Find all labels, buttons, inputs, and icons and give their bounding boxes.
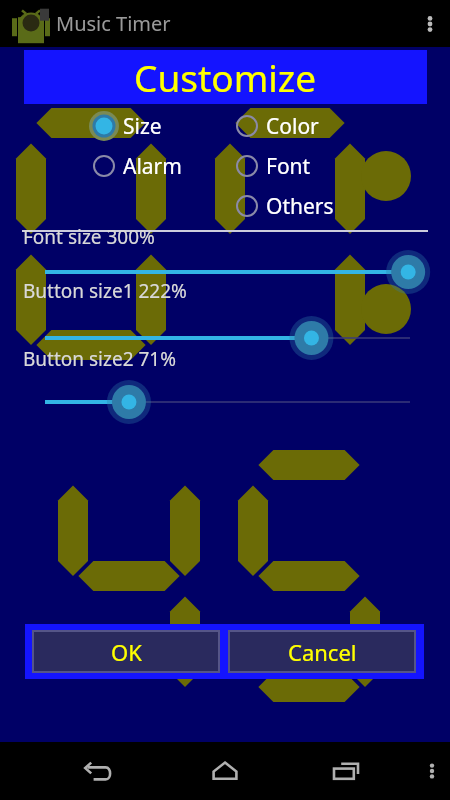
button[interactable] xyxy=(20,250,430,294)
staticText: Button size1 222% xyxy=(23,278,187,304)
button[interactable]: Back xyxy=(70,745,122,797)
button[interactable]: More options xyxy=(410,0,450,47)
staticText: Font size 300% xyxy=(23,224,155,250)
staticText: Others xyxy=(266,192,334,221)
staticText: Color xyxy=(266,112,319,141)
staticText: Alarm xyxy=(123,152,182,181)
button[interactable]: Home xyxy=(199,745,251,797)
button[interactable]: Menu xyxy=(414,742,450,800)
staticText: Customize xyxy=(134,52,317,102)
staticText: Font xyxy=(266,152,311,181)
button[interactable]: Cancel xyxy=(229,631,415,672)
button[interactable]: Others xyxy=(232,188,342,224)
button[interactable]: OK xyxy=(33,631,219,672)
staticText: Music Timer xyxy=(56,10,171,37)
staticText: Cancel xyxy=(288,637,357,667)
staticText: Button size2 71% xyxy=(23,346,176,372)
staticText: OK xyxy=(111,637,142,667)
button[interactable]: Color xyxy=(232,108,332,144)
button[interactable] xyxy=(20,316,430,360)
button[interactable]: Customize xyxy=(24,50,427,104)
button[interactable]: Size xyxy=(89,108,189,144)
button[interactable]: Recent apps xyxy=(320,745,372,797)
button[interactable]: Font xyxy=(232,148,332,184)
button[interactable]: Alarm xyxy=(89,148,189,184)
button[interactable] xyxy=(20,380,430,424)
staticText: Size xyxy=(123,112,162,141)
